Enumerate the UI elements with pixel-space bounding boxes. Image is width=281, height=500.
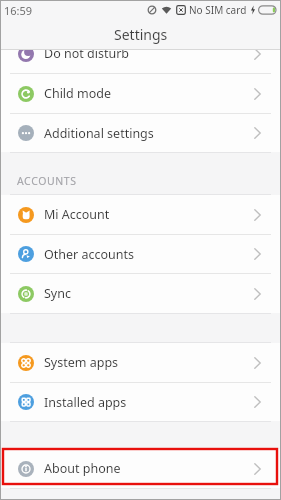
staticText: Sync bbox=[44, 285, 71, 302]
button[interactable]: About phone bbox=[0, 449, 281, 488]
staticText: Child mode bbox=[44, 85, 112, 102]
staticText: Settings bbox=[114, 25, 168, 44]
staticText: Additional settings bbox=[44, 125, 154, 142]
staticText: Mi Account bbox=[44, 206, 110, 223]
staticText: No SIM card bbox=[189, 3, 247, 17]
staticText: System apps bbox=[44, 354, 119, 371]
staticText: Other accounts bbox=[44, 246, 134, 263]
button[interactable]: Mi Account bbox=[0, 195, 281, 234]
button[interactable]: Sync bbox=[0, 274, 281, 313]
button[interactable]: Other accounts bbox=[0, 235, 281, 273]
staticText: ACCOUNTS bbox=[17, 174, 77, 188]
button[interactable]: Child mode bbox=[0, 74, 281, 113]
staticText: About phone bbox=[44, 460, 121, 477]
button[interactable]: System apps bbox=[0, 343, 281, 382]
staticText: Do not disturb bbox=[44, 50, 129, 62]
button[interactable]: Additional settings bbox=[0, 114, 281, 152]
button[interactable]: Installed apps bbox=[0, 383, 281, 421]
button[interactable]: Do not disturb bbox=[0, 50, 281, 73]
staticText: 16:59 bbox=[4, 3, 33, 18]
staticText: Installed apps bbox=[44, 394, 127, 411]
